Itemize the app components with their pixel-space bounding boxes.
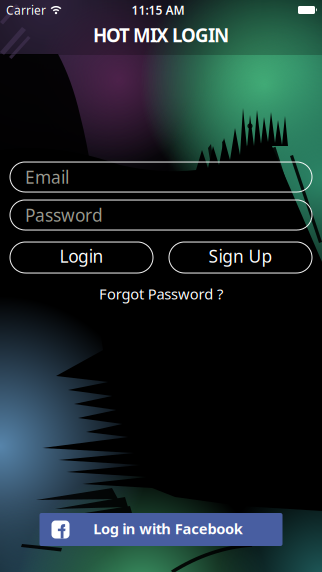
textField[interactable]: Email bbox=[25, 165, 300, 188]
staticText: Forgot Password ? bbox=[99, 284, 223, 303]
staticText: Email bbox=[25, 165, 69, 188]
button[interactable]: Forgot Password ? bbox=[99, 284, 223, 303]
textField[interactable]: Password bbox=[25, 203, 300, 226]
staticText: HOT MIX LOGIN bbox=[93, 23, 229, 47]
staticText: Password bbox=[25, 203, 103, 226]
staticText: Log in with Facebook bbox=[93, 519, 243, 538]
staticText: Login bbox=[59, 244, 104, 267]
button[interactable]: Log in with Facebook bbox=[39, 513, 282, 546]
button[interactable]: Sign Up bbox=[169, 242, 312, 273]
button[interactable]: Login bbox=[10, 242, 153, 273]
staticText: 11:15 AM bbox=[131, 2, 184, 18]
staticText: Sign Up bbox=[209, 244, 272, 267]
staticText: Carrier bbox=[6, 2, 46, 18]
